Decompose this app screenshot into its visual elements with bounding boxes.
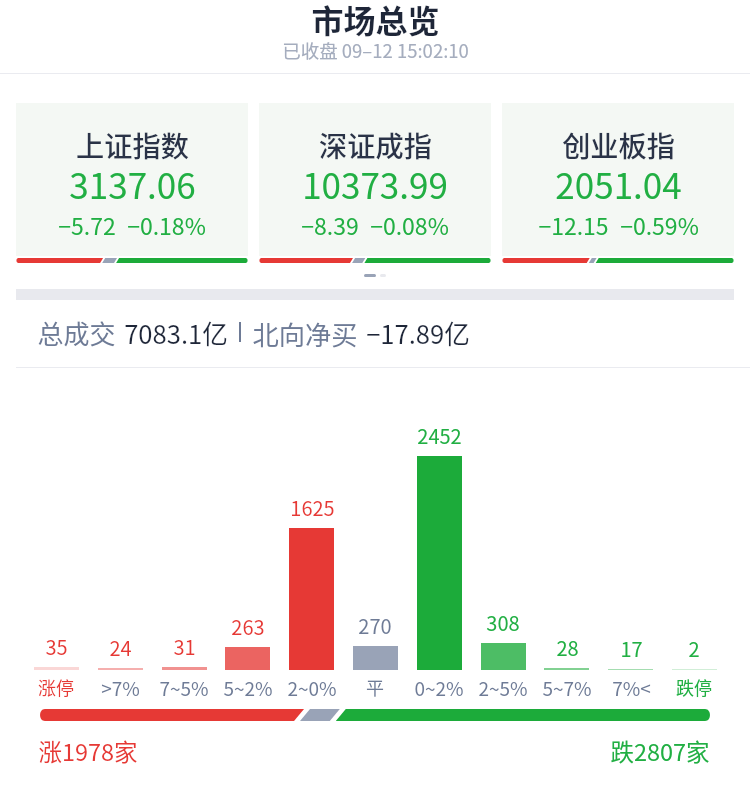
staticText: 28 — [556, 633, 579, 662]
staticText: 17 — [620, 634, 643, 663]
staticText: −8.39 — [301, 208, 359, 241]
staticText: 涨1978家 — [38, 734, 138, 768]
staticText: 7%< — [612, 674, 651, 702]
staticText: 0~2% — [414, 674, 464, 702]
button[interactable]: 创业板指 — [502, 103, 734, 263]
staticText: 5~7% — [542, 674, 592, 702]
staticText: 深证成指 — [319, 124, 432, 165]
staticText: 10373.99 — [302, 158, 448, 209]
staticText: −12.15 — [538, 208, 609, 241]
staticText: 创业板指 — [562, 124, 675, 165]
staticText: 总成交 — [37, 314, 116, 352]
staticText: −0.59% — [620, 208, 699, 241]
staticText: 270 — [358, 611, 392, 640]
staticText: −17.89亿 — [366, 314, 470, 351]
staticText: −5.72 — [58, 208, 116, 241]
staticText: −0.18% — [127, 208, 206, 241]
button[interactable]: 深证成指 — [259, 103, 491, 263]
staticText: 2~5% — [478, 674, 528, 702]
staticText: 35 — [45, 632, 68, 661]
staticText: 308 — [486, 608, 520, 637]
staticText: 北向净买 — [252, 314, 358, 352]
staticText: 2452 — [417, 421, 462, 450]
staticText: 市场总览 — [311, 0, 440, 42]
staticText: 2051.04 — [555, 158, 682, 209]
staticText: −0.08% — [370, 208, 449, 241]
button[interactable]: 总成交 — [37, 314, 116, 352]
staticText: 上证指数 — [76, 124, 189, 165]
staticText: 5~2% — [223, 674, 273, 702]
button[interactable]: 上证指数 — [16, 103, 248, 263]
staticText: 3137.06 — [69, 158, 196, 209]
staticText: 7~5% — [159, 674, 209, 702]
staticText: 涨停 — [38, 674, 74, 700]
staticText: 已收盘 09–12 15:02:10 — [282, 37, 469, 64]
staticText: 24 — [109, 633, 132, 662]
staticText: >7% — [101, 674, 140, 702]
button[interactable]: 跌2807家 — [610, 734, 710, 768]
staticText: 跌停 — [676, 674, 712, 700]
button[interactable]: 涨1978家 — [38, 734, 138, 768]
staticText: 2~0% — [287, 674, 337, 702]
staticText: 跌2807家 — [610, 734, 710, 768]
staticText: 263 — [231, 612, 265, 641]
staticText: 2 — [688, 634, 700, 663]
staticText: 1625 — [290, 493, 335, 522]
staticText: 31 — [173, 632, 196, 661]
staticText: 平 — [366, 674, 384, 700]
staticText: 7083.1亿 — [124, 314, 228, 351]
